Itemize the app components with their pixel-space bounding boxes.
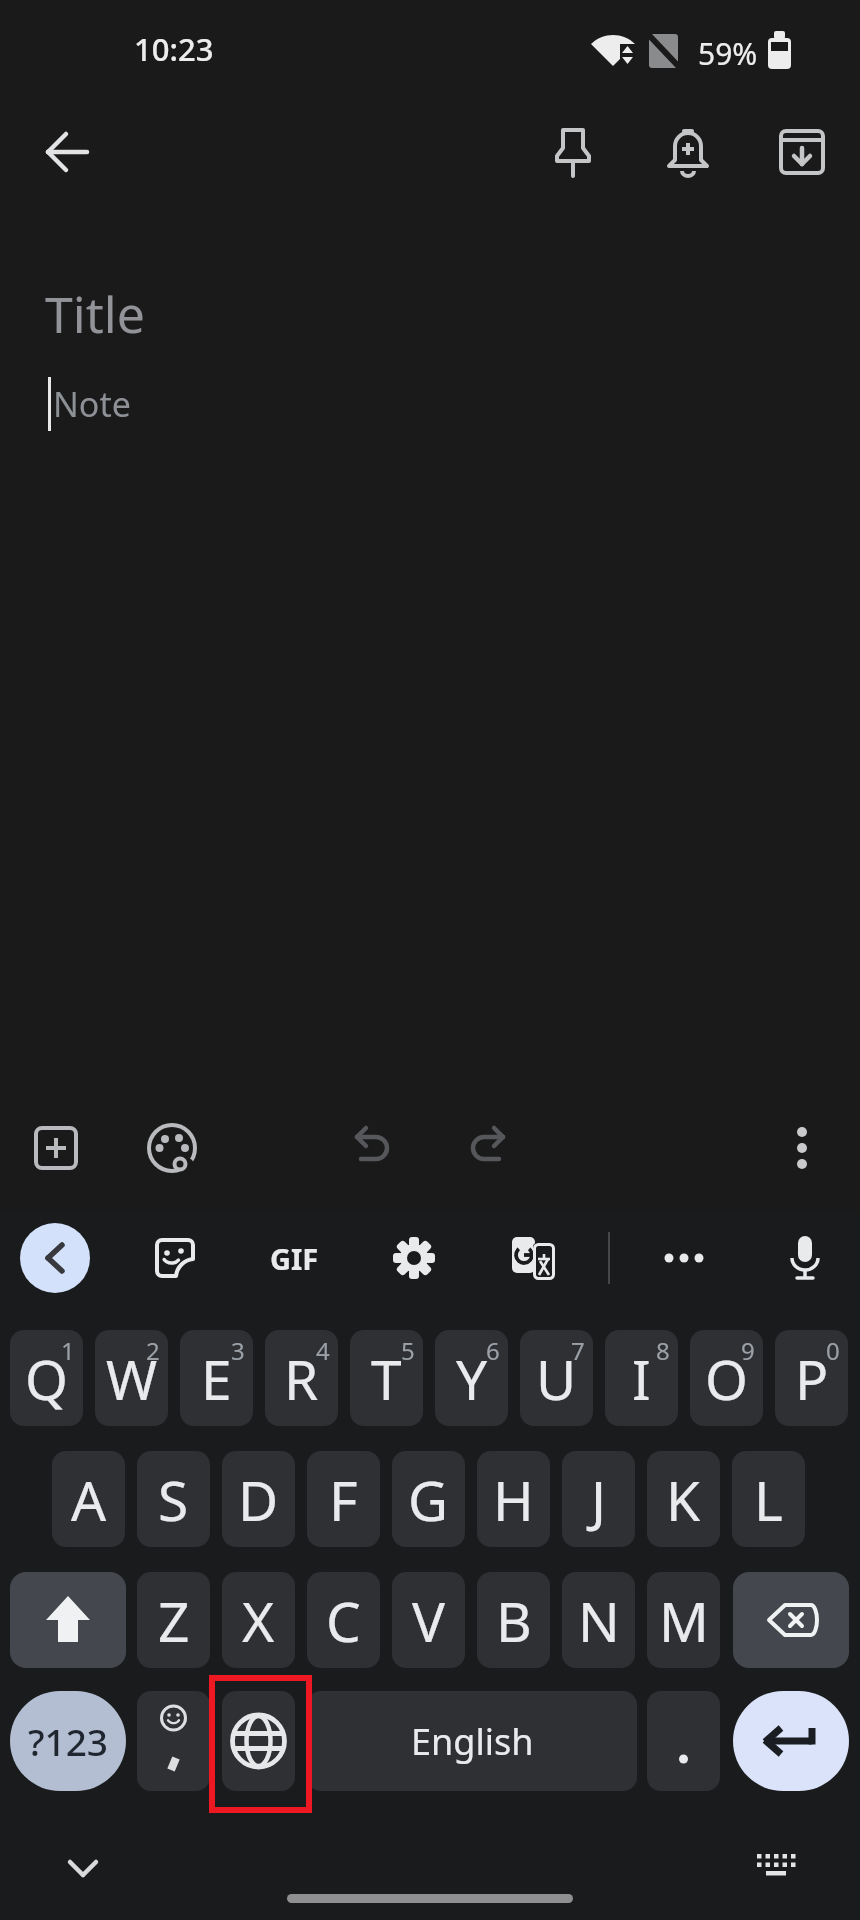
staticText: 1 [61, 1334, 75, 1367]
staticText: Q [25, 1341, 68, 1416]
button[interactable]: Y [435, 1330, 508, 1426]
button[interactable]: V [392, 1572, 465, 1668]
staticText: K [666, 1462, 701, 1537]
staticText: 4 [316, 1334, 330, 1367]
button[interactable] [541, 120, 605, 184]
button[interactable] [770, 1116, 834, 1180]
button[interactable] [20, 1223, 90, 1293]
button[interactable] [750, 1845, 802, 1887]
button[interactable]: C [307, 1572, 380, 1668]
button[interactable]: M [647, 1572, 720, 1668]
button[interactable]: T [350, 1330, 423, 1426]
button[interactable] [55, 1840, 111, 1896]
button[interactable]: S [137, 1451, 210, 1547]
button[interactable] [733, 1572, 849, 1668]
staticText: U [536, 1341, 577, 1416]
staticText: 59% [698, 33, 758, 74]
staticText: J [591, 1462, 607, 1537]
button[interactable] [35, 120, 99, 184]
button[interactable]: B [477, 1572, 550, 1668]
staticText: O [705, 1341, 748, 1416]
button[interactable] [733, 1691, 849, 1791]
staticText: V [412, 1583, 446, 1658]
button[interactable]: J [562, 1451, 635, 1547]
button[interactable]: Z [137, 1572, 210, 1668]
staticText: G [408, 1462, 449, 1537]
button[interactable] [773, 1226, 837, 1290]
button[interactable]: L [732, 1451, 805, 1547]
staticText: 5 [401, 1334, 415, 1367]
button[interactable] [143, 1226, 207, 1290]
button[interactable] [10, 1572, 126, 1668]
staticText: S [158, 1462, 189, 1537]
staticText: 8 [656, 1334, 670, 1367]
button[interactable]: English [307, 1691, 637, 1791]
staticText: 9 [741, 1334, 755, 1367]
staticText: Z [158, 1583, 190, 1658]
staticText: Note [53, 381, 131, 427]
staticText: 7 [571, 1334, 585, 1367]
staticText: ?123 [28, 1716, 109, 1766]
staticText: I [632, 1341, 651, 1416]
button[interactable] [501, 1226, 565, 1290]
button[interactable] [656, 120, 720, 184]
button[interactable]: X [222, 1572, 295, 1668]
staticText: A [71, 1462, 107, 1537]
staticText: W [106, 1341, 158, 1416]
button[interactable]: K [647, 1451, 720, 1547]
button[interactable]: R [265, 1330, 338, 1426]
staticText: 10:23 [134, 28, 214, 70]
staticText: Y [456, 1341, 488, 1416]
staticText: P [795, 1341, 829, 1416]
button[interactable]: O [690, 1330, 763, 1426]
staticText: Title [45, 280, 145, 348]
staticText: F [329, 1462, 358, 1537]
staticText: M [659, 1583, 709, 1658]
staticText: GIF [270, 1239, 319, 1278]
staticText: 0 [826, 1334, 840, 1367]
button[interactable]: Q [10, 1330, 83, 1426]
staticText: N [578, 1583, 620, 1658]
button[interactable] [137, 1691, 210, 1791]
staticText: X [242, 1583, 275, 1658]
button[interactable]: W [95, 1330, 168, 1426]
staticText: T [371, 1341, 402, 1416]
button[interactable]: I [605, 1330, 678, 1426]
button[interactable]: E [180, 1330, 253, 1426]
button[interactable]: GIF [252, 1226, 336, 1290]
button[interactable]: F [307, 1451, 380, 1547]
staticText: C [326, 1583, 361, 1658]
staticText: E [201, 1341, 232, 1416]
staticText: H [493, 1462, 534, 1537]
button[interactable] [341, 1116, 405, 1180]
staticText: 3 [231, 1334, 245, 1367]
button[interactable]: H [477, 1451, 550, 1547]
staticText: D [238, 1462, 279, 1537]
button[interactable] [222, 1691, 295, 1791]
button[interactable]: P [775, 1330, 848, 1426]
button[interactable] [140, 1116, 204, 1180]
button[interactable]: N [562, 1572, 635, 1668]
staticText: B [496, 1583, 532, 1658]
button[interactable] [24, 1116, 88, 1180]
button[interactable]: ?123 [10, 1691, 126, 1791]
staticText: 6 [486, 1334, 500, 1367]
button[interactable] [382, 1226, 446, 1290]
button[interactable] [647, 1691, 720, 1791]
staticText: R [284, 1341, 319, 1416]
staticText: L [754, 1462, 783, 1537]
button[interactable] [652, 1226, 716, 1290]
staticText: 2 [146, 1334, 160, 1367]
button[interactable] [455, 1116, 519, 1180]
staticText: English [411, 1717, 534, 1766]
button[interactable]: D [222, 1451, 295, 1547]
button[interactable]: U [520, 1330, 593, 1426]
button[interactable]: A [52, 1451, 125, 1547]
button[interactable]: G [392, 1451, 465, 1547]
button[interactable] [770, 120, 834, 184]
